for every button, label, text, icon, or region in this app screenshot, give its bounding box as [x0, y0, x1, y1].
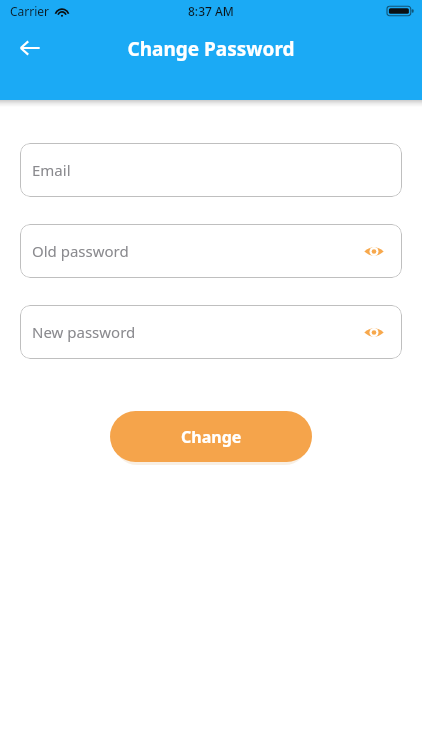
button[interactable]: Email	[20, 143, 402, 197]
button[interactable]: Change	[110, 411, 312, 462]
staticText: Carrier	[10, 3, 50, 19]
staticText: Email	[32, 160, 71, 180]
staticText: Change	[181, 426, 242, 448]
staticText: New password	[32, 322, 136, 342]
button[interactable]: Old password	[20, 224, 402, 278]
button[interactable]: Back	[12, 30, 48, 66]
button[interactable]: New password	[20, 305, 402, 359]
button[interactable]: Show password	[359, 317, 389, 347]
staticText: 8:37 AM	[188, 3, 234, 19]
staticText: Change Password	[127, 36, 295, 62]
staticText: Old password	[32, 241, 129, 261]
button[interactable]: Show password	[359, 236, 389, 266]
